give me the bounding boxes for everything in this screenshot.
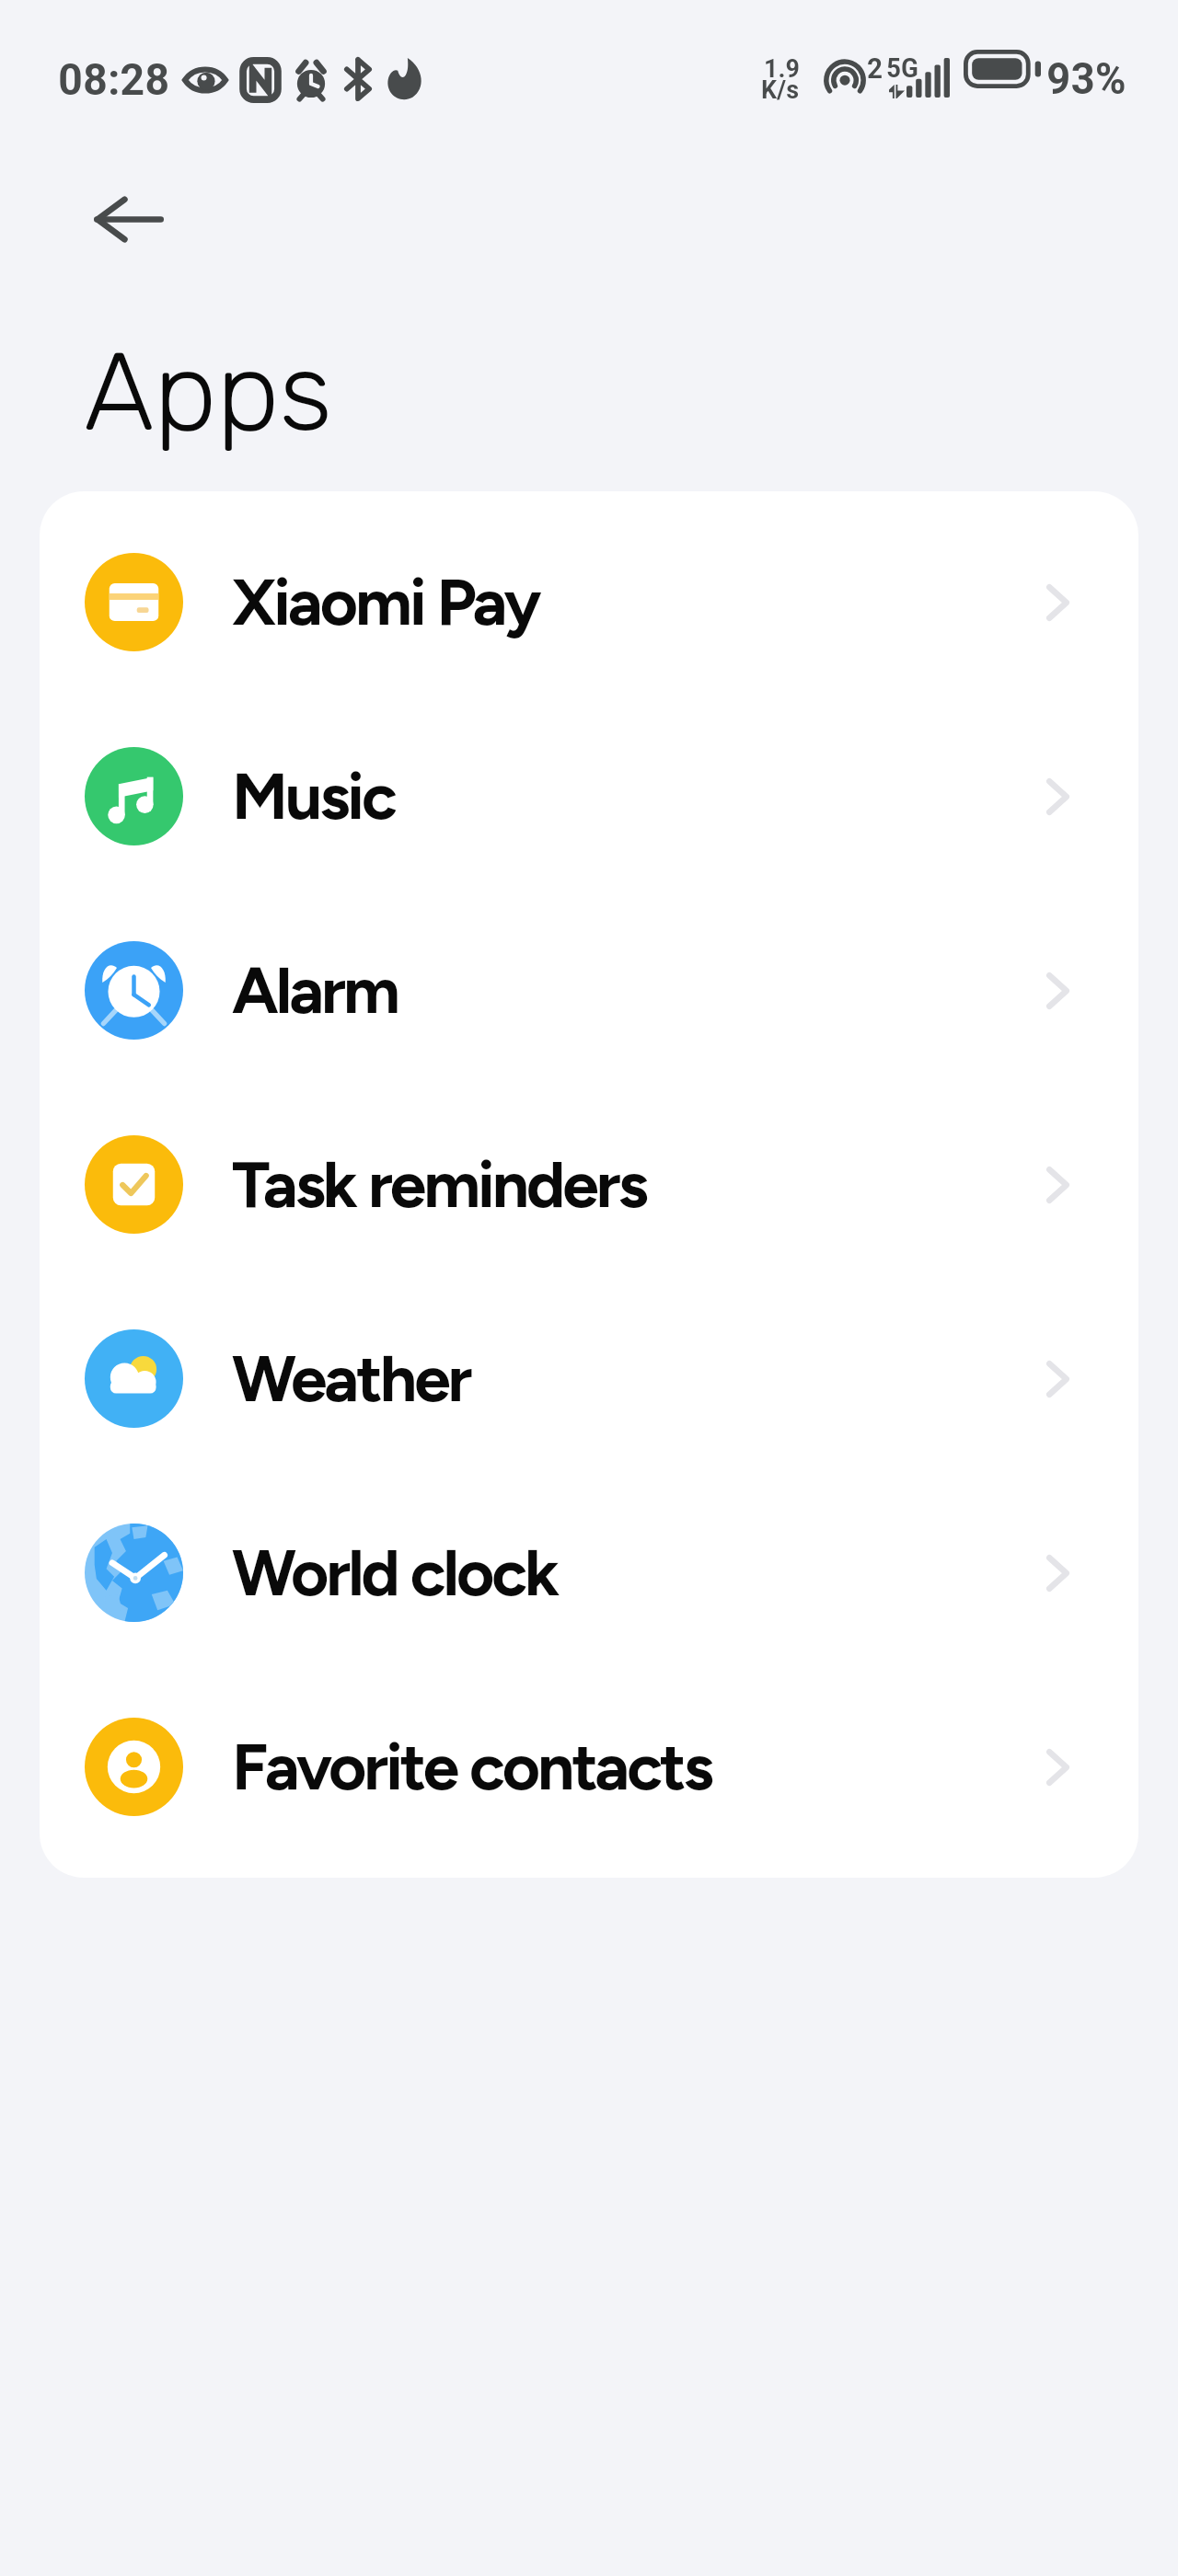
staticText: 08:28 (58, 53, 170, 106)
button[interactable]: Xiaomi Pay (40, 505, 1138, 699)
staticText: Apps (84, 328, 332, 457)
button[interactable]: Favorite contacts (40, 1670, 1138, 1864)
button[interactable]: World clock (40, 1476, 1138, 1670)
staticText: 2 (867, 52, 883, 85)
staticText: 1.9 (764, 53, 800, 84)
staticText: Music (232, 757, 395, 835)
button[interactable]: Alarm (40, 893, 1138, 1087)
button[interactable]: Music (40, 699, 1138, 893)
staticText: 5G (886, 52, 918, 84)
button[interactable]: Task reminders (40, 1087, 1138, 1282)
staticText: World clock (232, 1534, 558, 1612)
staticText: 93% (1046, 52, 1126, 104)
staticText: Task reminders (232, 1145, 646, 1224)
staticText: K/s (761, 75, 800, 105)
staticText: Favorite contacts (232, 1728, 711, 1806)
staticText: Alarm (232, 951, 398, 1029)
staticText: Weather (232, 1340, 470, 1418)
button[interactable]: Back (64, 155, 193, 283)
button[interactable]: Weather (40, 1282, 1138, 1476)
staticText: Xiaomi Pay (232, 563, 539, 641)
